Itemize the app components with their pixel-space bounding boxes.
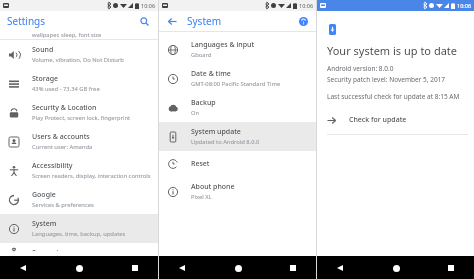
staticText: Accessibility [32,161,73,171]
button[interactable]: Home [387,259,405,277]
button[interactable]: Home [229,259,247,277]
staticText: 10:06 [141,2,156,9]
button[interactable]: System update [159,122,316,151]
staticText: Screen readers, display, interaction con… [32,172,151,180]
staticText: wallpaper, sleep, font size [32,31,102,39]
staticText: Backup [191,98,216,108]
staticText: System [32,219,57,229]
button[interactable]: Help [296,14,310,28]
staticText: System update [191,127,241,137]
staticText: Android version: 8.0.0 [327,64,394,73]
staticText: 10:06 [457,2,472,9]
button[interactable]: Sound [0,40,158,69]
button[interactable]: Back [173,259,191,277]
staticText: Google [32,190,56,200]
staticText: Date & time [191,69,231,79]
button[interactable]: System [0,214,158,243]
staticText: Storage [32,74,58,84]
staticText: Sound [32,45,54,55]
button[interactable]: Recents [284,259,302,277]
staticText: Volume, vibration, Do Not Disturb [32,56,124,64]
button[interactable]: Back [14,259,32,277]
button[interactable]: Navigate up [165,14,179,28]
staticText: 10:06 [299,2,314,9]
staticText: About phone [191,182,235,192]
button[interactable]: Settings [7,14,46,28]
button[interactable]: Home [70,259,88,277]
staticText: On [191,109,200,117]
button[interactable]: Accessibility [0,156,158,185]
staticText: Check for update [349,115,407,125]
button[interactable]: About phone [159,177,316,206]
staticText: Reset [191,159,210,169]
staticText: Services & preferences [32,201,94,209]
button[interactable]: Security & Location [0,98,158,127]
button[interactable]: Languages & input [159,35,316,64]
staticText: Updated to Android 8.0.0 [191,138,260,146]
staticText: Support [32,248,59,251]
staticText: Current user: Amanda [32,143,93,151]
staticText: Last successful check for update at 8:15… [327,92,460,101]
staticText: Pixel XL [191,193,212,201]
button[interactable]: Recents [126,259,144,277]
button[interactable]: Date & time [159,64,316,93]
staticText: Users & accounts [32,132,90,142]
staticText: Languages & input [191,40,255,50]
staticText: Gboard [191,51,212,59]
button[interactable]: Storage [0,69,158,98]
staticText: 43% used - 73.34 GB free [32,85,100,93]
staticText: Security patch level: November 5, 2017 [327,75,446,84]
staticText: Your system is up to date [327,43,457,58]
button[interactable]: Support [0,243,158,256]
button[interactable]: Search [137,14,151,28]
staticText: Play Protect, screen lock, fingerprint [32,114,131,122]
button[interactable]: Reset [159,151,316,177]
button[interactable]: Backup [159,93,316,122]
staticText: Languages, time, backup, updates [32,230,126,238]
button[interactable]: Google [0,185,158,214]
button[interactable]: Check for update [317,112,474,128]
button[interactable]: Recents [442,259,460,277]
staticText: Security & Location [32,103,97,113]
button[interactable]: Back [331,259,349,277]
staticText: GMT-08:00 Pacific Standard Time [191,80,281,88]
button[interactable]: System [187,14,221,28]
button[interactable]: Users & accounts [0,127,158,156]
